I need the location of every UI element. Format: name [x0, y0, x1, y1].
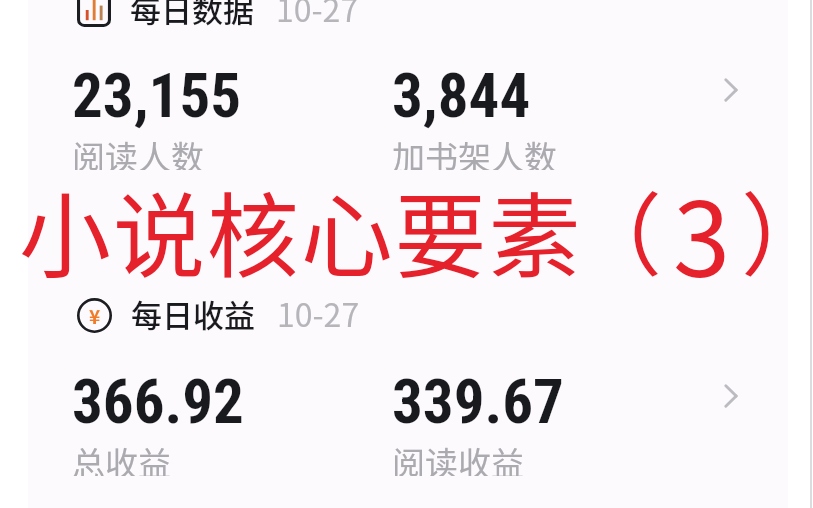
- button[interactable]: 366.92: [28, 360, 788, 470]
- button[interactable]: Open details: [700, 54, 760, 126]
- button[interactable]: Open details: [700, 360, 760, 432]
- button[interactable]: 23,155: [28, 54, 788, 164]
- staticText: 3: [673, 158, 731, 307]
- button[interactable]: ¥: [28, 295, 788, 335]
- staticText: 阅读人数: [72, 132, 204, 170]
- staticText: 10-27: [277, 290, 360, 330]
- staticText: 10-27: [276, 0, 359, 25]
- staticText: 阅读收益: [392, 438, 524, 476]
- staticText: 小说核心要素: [19, 163, 583, 296]
- staticText: 总收益: [72, 438, 171, 476]
- staticText: 366.92: [72, 366, 244, 437]
- staticText: 每日数据: [130, 0, 254, 26]
- staticText: 每日收益: [131, 291, 255, 331]
- staticText: 加书架人数: [392, 132, 557, 170]
- staticText: 3,844: [392, 60, 531, 131]
- staticText: 339.67: [392, 366, 564, 437]
- button[interactable]: 每日数据: [28, 0, 788, 30]
- staticText: ）: [741, 164, 813, 294]
- staticText: 23,155: [72, 60, 242, 131]
- staticText: （: [572, 164, 662, 294]
- staticText: ¥: [89, 302, 101, 330]
